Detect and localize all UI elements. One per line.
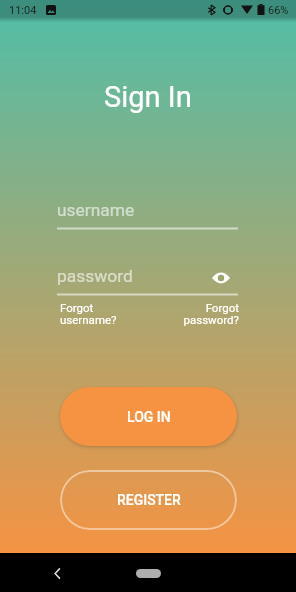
staticText: Forgot username?	[60, 301, 117, 327]
button[interactable]: Show password	[207, 264, 234, 291]
button[interactable]: REGISTER	[60, 470, 237, 530]
staticText: REGISTER	[117, 492, 181, 508]
staticText: LOG IN	[127, 409, 171, 425]
staticText: 11:04	[9, 4, 37, 17]
staticText: Sign In	[104, 80, 192, 114]
button[interactable]: username	[57, 200, 238, 230]
staticText: username	[57, 200, 135, 220]
staticText: Forgot password?	[183, 301, 239, 327]
staticText: 66%	[268, 4, 289, 17]
button[interactable]: password	[57, 266, 238, 296]
button[interactable]: LOG IN	[60, 387, 237, 446]
button[interactable]: Back	[41, 557, 73, 589]
button[interactable]: Home	[126, 561, 170, 585]
button[interactable]: Forgot username?	[60, 301, 117, 327]
staticText: password	[57, 266, 133, 286]
button[interactable]: Forgot password?	[183, 301, 239, 327]
